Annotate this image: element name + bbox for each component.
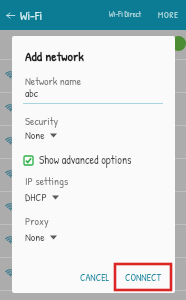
staticText: None [25,230,45,245]
button[interactable]: Back [1,4,19,26]
button[interactable] [0,191,186,224]
button[interactable]: MORE [155,5,182,25]
staticText: CONNECT [125,271,162,285]
button[interactable] [0,59,186,92]
staticText: CANCEL [80,271,110,285]
staticText: Show advanced options [39,152,132,168]
staticText: Network name [25,74,82,89]
staticText: Wi-Fi [20,7,43,23]
staticText: Proxy [25,214,49,229]
staticText: MORE [158,9,179,21]
button[interactable]: DHCP [25,190,61,205]
staticText: None [25,128,45,143]
button[interactable]: CONNECT [119,266,168,290]
button[interactable] [0,257,186,290]
button[interactable] [0,224,186,257]
button[interactable] [0,290,186,300]
staticText: abc [25,86,39,101]
staticText: Add network [25,47,84,65]
button[interactable]: CANCEL [74,266,116,290]
button[interactable]: None [25,128,59,143]
button[interactable] [0,92,186,125]
staticText: Security [25,114,59,129]
button[interactable]: Show advanced options [24,152,132,168]
staticText: IP settings [25,174,69,189]
button[interactable]: Wi-Fi Direct [106,5,145,23]
staticText: Wi-Fi Direct [109,9,142,19]
button[interactable]: None [25,230,59,245]
button[interactable] [0,158,186,191]
button[interactable] [0,125,186,158]
staticText: DHCP [25,190,47,205]
